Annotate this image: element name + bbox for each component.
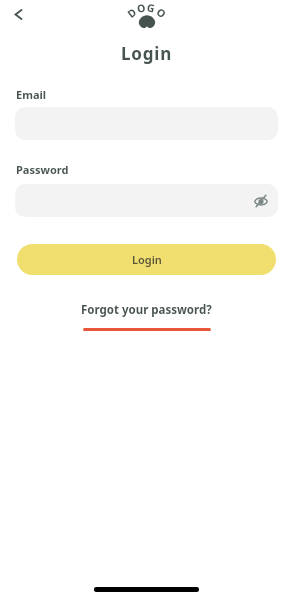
button[interactable] bbox=[250, 190, 272, 212]
staticText: O bbox=[135, 0, 147, 16]
button[interactable] bbox=[15, 184, 278, 217]
staticText: D bbox=[124, 5, 139, 21]
button[interactable]: Login bbox=[17, 244, 276, 275]
staticText: Forgot your password? bbox=[81, 302, 212, 318]
button[interactable] bbox=[8, 4, 28, 24]
staticText: Login bbox=[132, 252, 162, 267]
staticText: O bbox=[154, 5, 169, 21]
staticText: Login bbox=[0, 42, 293, 65]
staticText: G bbox=[146, 0, 156, 16]
staticText: Email bbox=[16, 87, 47, 102]
button[interactable]: Forgot your password? bbox=[0, 302, 293, 331]
staticText: Password bbox=[16, 162, 69, 177]
